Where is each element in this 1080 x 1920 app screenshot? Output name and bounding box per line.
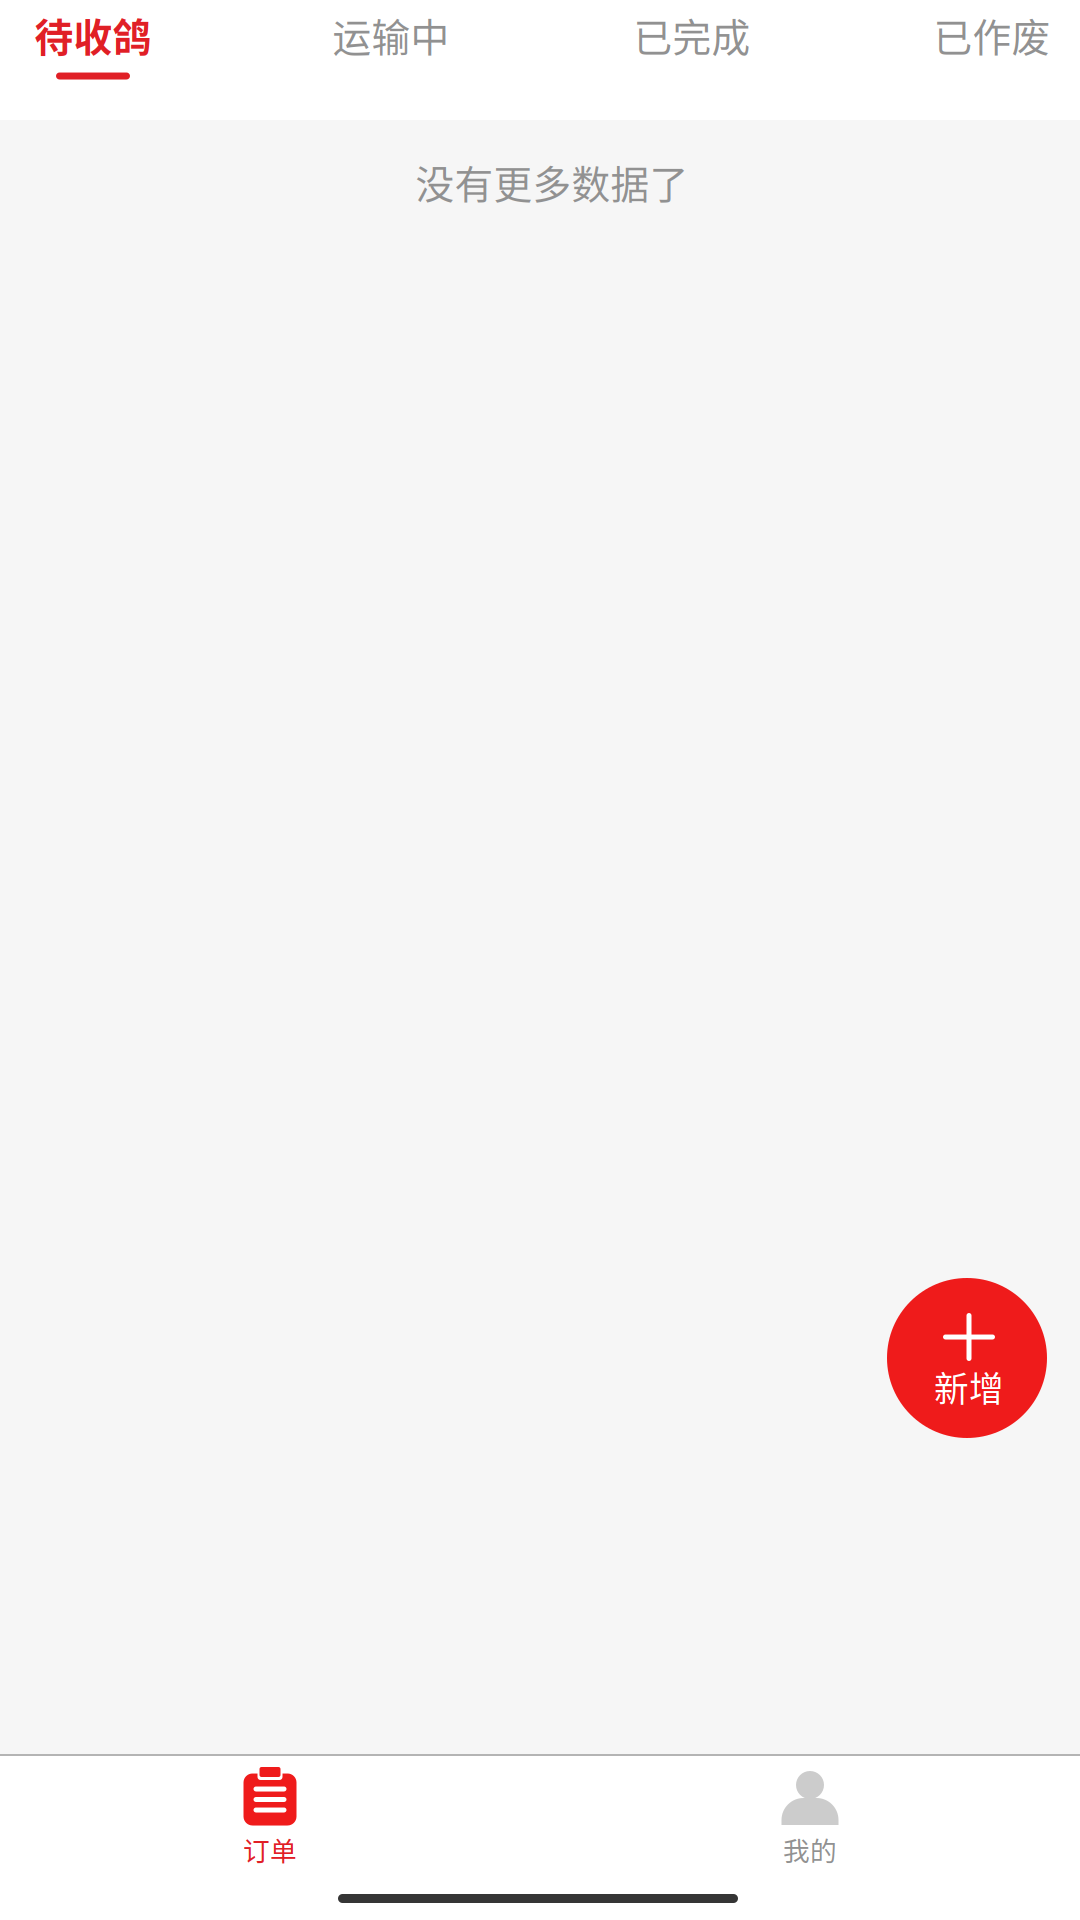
staticText: 订单	[243, 1830, 297, 1869]
staticText: 我的	[783, 1830, 837, 1869]
button[interactable]: 订单	[0, 1755, 540, 1883]
button[interactable]: 已完成	[599, 0, 785, 94]
staticText: 已作废	[933, 7, 1050, 63]
button[interactable]: 新增	[887, 1278, 1047, 1438]
staticText: 已完成	[633, 7, 750, 63]
staticText: 没有更多数据了	[415, 154, 688, 210]
staticText: 待收鸽	[34, 7, 151, 63]
button[interactable]: 我的	[540, 1755, 1080, 1883]
button[interactable]: 已作废	[899, 0, 1080, 94]
button[interactable]: 运输中	[298, 0, 484, 94]
button[interactable]: 待收鸽	[0, 0, 186, 94]
staticText: 运输中	[332, 7, 449, 63]
staticText: 新增	[934, 1362, 1004, 1412]
